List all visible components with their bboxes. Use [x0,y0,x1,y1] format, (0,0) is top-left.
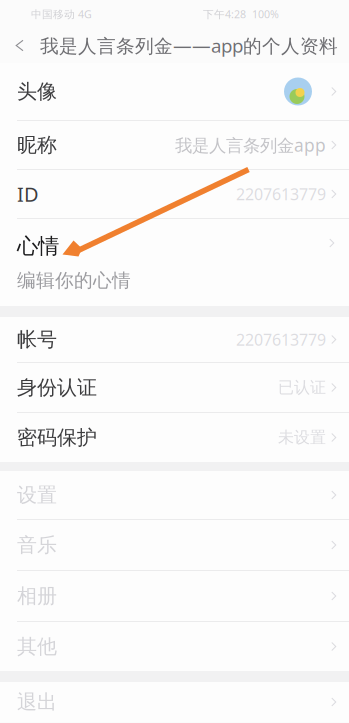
staticText: 密码保护 [17,425,97,450]
button[interactable]: 头像 [0,63,349,120]
button[interactable]: 心情 [0,219,349,306]
button[interactable]: 身份认证 [0,363,349,412]
staticText: 设置 [17,483,57,507]
button[interactable]: 返回 [7,28,33,62]
button[interactable]: 音乐 [0,520,349,570]
button[interactable]: 相册 [0,571,349,621]
button[interactable]: 密码保护 [0,413,349,462]
staticText: 心情 [17,233,59,259]
staticText: 音乐 [17,533,57,557]
button[interactable]: 设置 [0,471,349,519]
staticText: 昵称 [17,133,57,157]
staticText: 编辑你的心情 [17,269,131,292]
staticText: 我是人言条列金app [175,133,326,156]
staticText: 头像 [17,79,57,104]
staticText: 相册 [17,584,57,608]
staticText: 我是人言条列金——app的个人资料 [40,33,338,58]
staticText: ID [17,181,39,207]
button[interactable]: 退出 [0,682,349,722]
staticText: 下午4:28 100% [203,7,279,21]
staticText: 退出 [17,690,57,714]
button[interactable]: 帐号 [0,317,349,362]
staticText: 未设置 [278,428,326,447]
staticText: 帐号 [17,327,57,352]
staticText: 2207613779 [236,183,326,205]
button[interactable]: ID [0,170,349,218]
staticText: 2207613779 [236,329,326,350]
staticText: 中国移动 4G [31,7,92,21]
staticText: 其他 [17,634,57,659]
button[interactable]: 昵称 [0,121,349,169]
staticText: 已认证 [278,378,326,397]
staticText: 身份认证 [17,375,97,400]
button[interactable]: 其他 [0,622,349,671]
